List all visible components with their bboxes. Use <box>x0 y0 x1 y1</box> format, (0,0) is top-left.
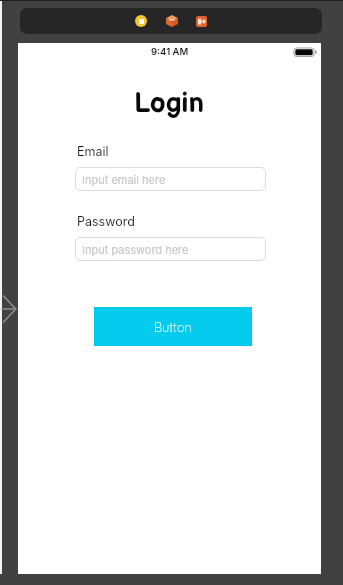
button[interactable]: Input password here <box>75 237 266 261</box>
staticText: Password <box>77 214 135 229</box>
button[interactable] <box>196 16 207 27</box>
button[interactable] <box>166 15 178 27</box>
staticText: 9:41 AM <box>151 46 189 57</box>
button[interactable]: Input email here <box>75 167 266 191</box>
staticText: Input email here <box>82 173 166 186</box>
staticText: Login <box>134 87 205 121</box>
button[interactable] <box>135 15 147 27</box>
button[interactable]: Button <box>94 307 252 346</box>
staticText: Email <box>77 144 109 159</box>
staticText: Input password here <box>82 243 189 256</box>
staticText: Button <box>154 319 192 335</box>
